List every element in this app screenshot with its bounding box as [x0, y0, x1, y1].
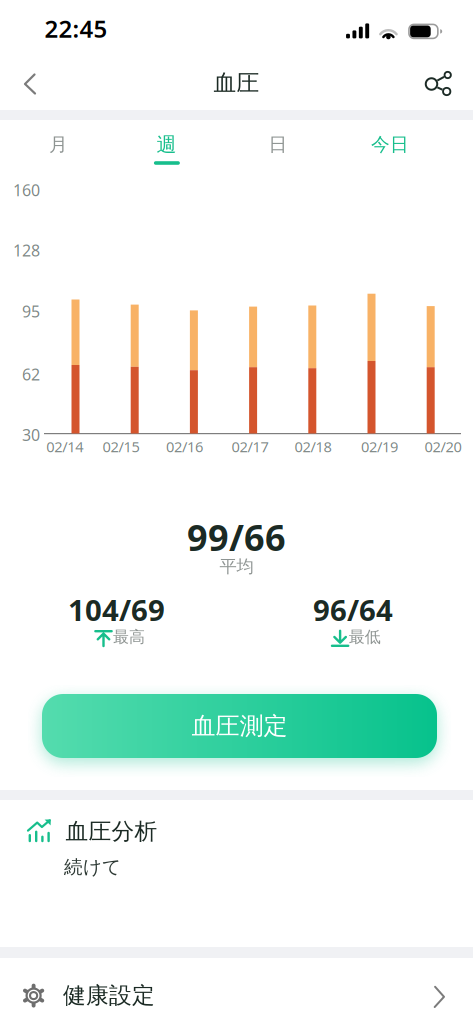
- staticText: 血圧測定: [191, 711, 287, 741]
- button[interactable]: 週: [126, 124, 206, 164]
- button[interactable]: [10, 62, 54, 106]
- staticText: 02/19: [361, 437, 398, 456]
- staticText: 62: [22, 364, 40, 385]
- staticText: 最低: [349, 627, 381, 647]
- staticText: 128: [13, 240, 40, 261]
- staticText: 続けて: [64, 855, 121, 878]
- staticText: 最高: [113, 627, 145, 647]
- staticText: 今日: [371, 133, 409, 156]
- staticText: 血圧: [213, 69, 259, 97]
- staticText: 02/16: [166, 437, 203, 456]
- staticText: 02/17: [232, 437, 269, 456]
- staticText: 02/20: [425, 437, 462, 456]
- staticText: 30: [22, 424, 40, 445]
- staticText: 02/18: [294, 437, 331, 456]
- staticText: 血圧分析: [65, 818, 157, 845]
- staticText: 104/69: [68, 590, 165, 629]
- button[interactable]: [413, 61, 461, 105]
- staticText: 週: [156, 132, 176, 157]
- staticText: 160: [13, 179, 40, 201]
- button[interactable]: 日: [238, 124, 318, 164]
- staticText: 22:45: [44, 13, 107, 44]
- staticText: 02/14: [46, 437, 83, 456]
- button[interactable]: 血圧分析: [0, 800, 473, 947]
- staticText: 95: [22, 301, 40, 322]
- staticText: 02/15: [102, 437, 139, 456]
- button[interactable]: 血圧測定: [42, 694, 437, 758]
- button[interactable]: 健康設定: [0, 958, 473, 1024]
- staticText: 99/66: [187, 513, 286, 561]
- button[interactable]: 今日: [350, 124, 430, 164]
- button[interactable]: 月: [19, 124, 99, 164]
- staticText: 月: [49, 133, 68, 156]
- staticText: 平均: [219, 556, 253, 577]
- staticText: 日: [268, 133, 287, 156]
- staticText: 96/64: [313, 590, 393, 629]
- staticText: 健康設定: [63, 982, 155, 1009]
